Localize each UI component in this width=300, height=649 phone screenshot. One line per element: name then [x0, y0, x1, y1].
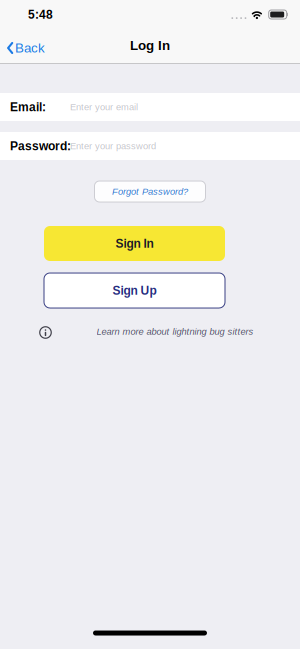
staticText: Email:: [10, 100, 46, 114]
button[interactable]: Sign Up: [44, 273, 225, 308]
staticText: Enter your email: [70, 102, 138, 112]
button[interactable]: Sign In: [44, 226, 225, 261]
staticText: 5:48: [28, 8, 53, 21]
staticText: Sign In: [115, 237, 153, 250]
button[interactable]: Back: [0, 40, 45, 54]
staticText: Learn more about lightning bug sitters: [96, 326, 253, 337]
button[interactable]: Password:: [0, 132, 300, 160]
staticText: Password:: [10, 139, 71, 153]
staticText: Log In: [130, 38, 170, 53]
button[interactable]: Forgot Password?: [94, 181, 205, 202]
button[interactable]: Learn more about lightning bug sitters: [96, 326, 253, 337]
staticText: Enter your password: [70, 141, 156, 151]
button[interactable]: Email:: [0, 93, 300, 121]
staticText: Forgot Password?: [112, 186, 188, 197]
staticText: Back: [15, 41, 45, 55]
staticText: Sign Up: [112, 284, 156, 297]
